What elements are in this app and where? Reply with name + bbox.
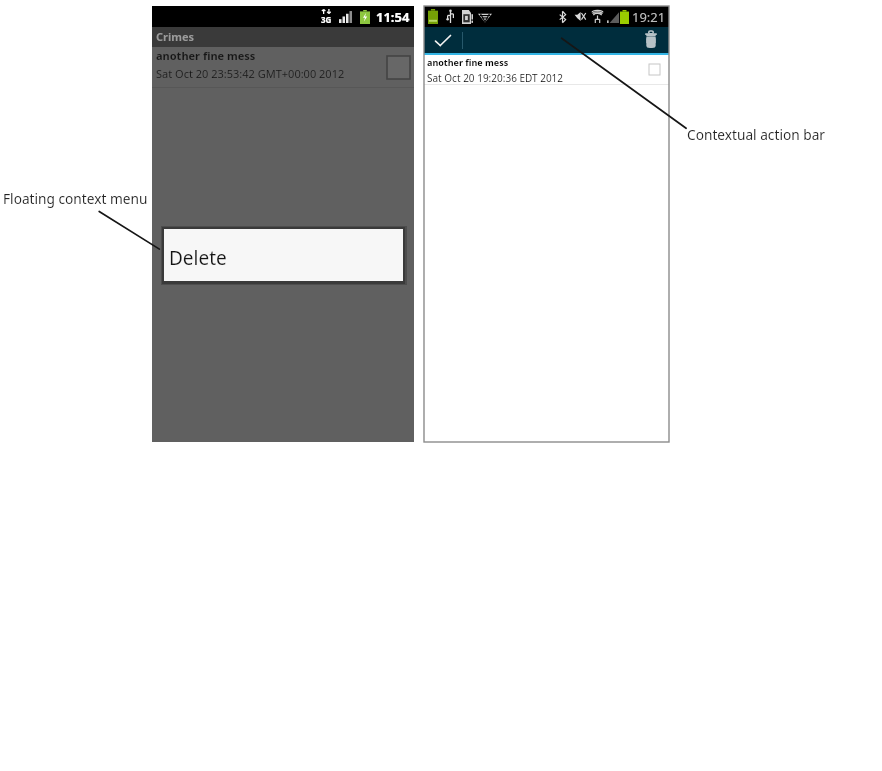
staticText: Floating context menu: [3, 189, 148, 208]
staticText: Sat Oct 20 19:20:36 EDT 2012: [427, 71, 564, 84]
button[interactable]: Done: [424, 27, 461, 53]
staticText: Contextual action bar: [687, 125, 825, 144]
staticText: another fine mess: [156, 48, 256, 63]
staticText: Sat Oct 20 23:53:42 GMT+00:00 2012: [156, 66, 345, 81]
staticText: 19:21: [632, 8, 666, 26]
staticText: another fine mess: [427, 56, 509, 68]
staticText: Delete: [169, 245, 227, 271]
staticText: 11:54: [376, 8, 410, 26]
staticText: 3G: [321, 14, 332, 25]
button[interactable]: another fine mess: [424, 55, 669, 84]
button[interactable]: Delete: [164, 229, 403, 281]
button[interactable]: Solved checkbox: [649, 64, 660, 75]
staticText: Crimes: [156, 29, 195, 44]
button[interactable]: another fine mess: [152, 47, 414, 87]
button[interactable]: Delete: [639, 27, 663, 53]
button[interactable]: Solved checkbox: [387, 56, 410, 79]
